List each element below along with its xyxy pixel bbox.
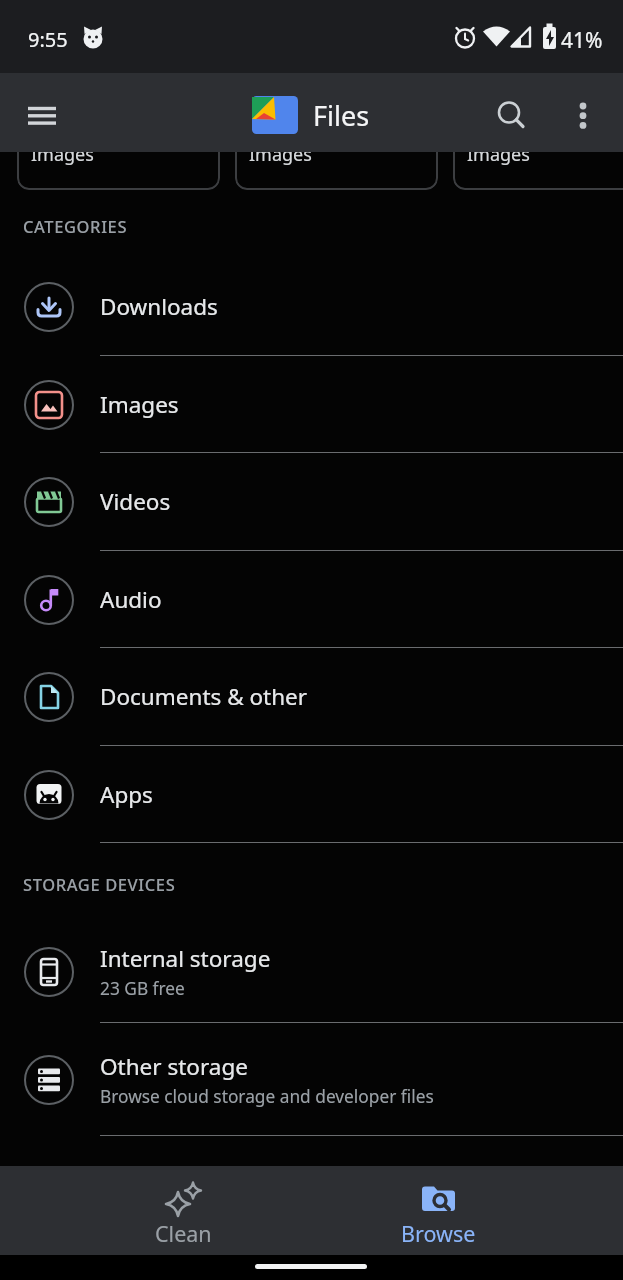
staticText: Videos [100,486,171,517]
staticText: Internal storage [100,943,271,974]
staticText: Documents & other [100,681,308,712]
button[interactable]: Apps [0,746,623,843]
staticText: Images [249,142,312,167]
button[interactable]: Images [453,130,623,190]
staticText: Files [313,97,370,134]
staticText: Browse cloud storage and developer files [100,1085,434,1109]
button[interactable]: Images [17,130,220,190]
staticText: Images [100,389,179,420]
staticText: 41% [561,26,603,55]
staticText: Downloads [100,291,218,322]
staticText: Images [31,142,94,167]
staticText: Audio [100,584,162,615]
button[interactable] [18,94,66,142]
button[interactable]: Other storage [0,1030,623,1130]
staticText: STORAGE DEVICES [23,873,176,895]
button[interactable]: Clean [103,1166,263,1255]
button[interactable]: Audio [0,551,623,648]
staticText: 9:55 [28,26,68,53]
button[interactable]: Images [235,130,438,190]
staticText: 23 GB free [100,977,185,1001]
staticText: Images [467,142,530,167]
staticText: Browse [401,1219,476,1248]
staticText: Clean [155,1219,212,1248]
button[interactable] [561,92,605,136]
staticText: Other storage [100,1051,248,1082]
staticText: Apps [100,779,153,810]
button[interactable]: Internal storage [0,922,623,1022]
button[interactable]: Browse [358,1166,518,1255]
button[interactable]: Downloads [0,258,623,355]
button[interactable]: Images [0,356,623,453]
button[interactable]: Documents & other [0,648,623,745]
button[interactable] [489,93,533,137]
button[interactable]: Videos [0,453,623,550]
staticText: CATEGORIES [23,215,128,237]
